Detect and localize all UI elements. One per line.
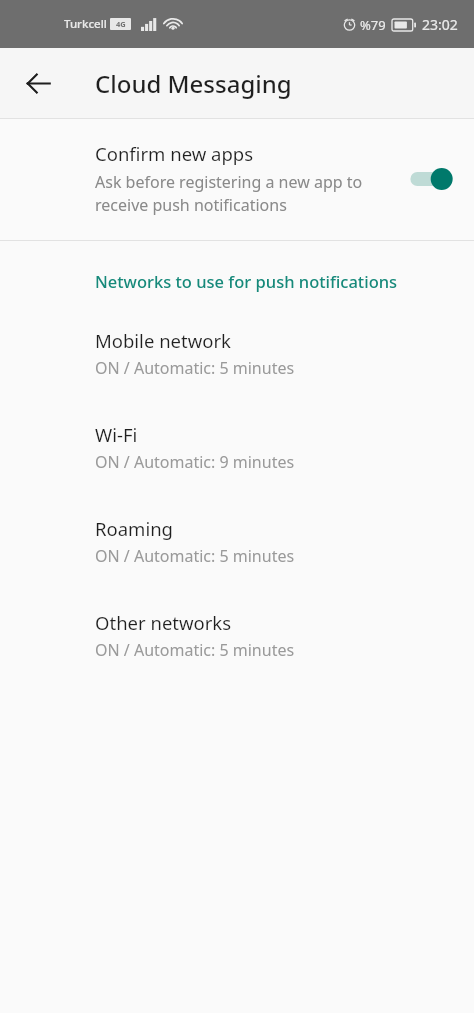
staticText: ON / Automatic: 9 minutes [95, 451, 295, 473]
staticText: Wi-Fi [95, 422, 138, 447]
staticText: 23:02 [422, 15, 458, 34]
staticText: Roaming [95, 516, 173, 541]
staticText: Mobile network [95, 328, 231, 353]
button[interactable]: Confirm new apps [0, 119, 474, 240]
button[interactable]: Other networks [0, 600, 474, 694]
staticText: %79 [360, 16, 386, 34]
staticText: Turkcell [64, 16, 107, 32]
staticText: ON / Automatic: 5 minutes [95, 639, 295, 661]
staticText: Confirm new apps [95, 141, 254, 166]
button[interactable]: Back [14, 59, 62, 107]
staticText: ON / Automatic: 5 minutes [95, 357, 295, 379]
button[interactable]: Wi-Fi [0, 412, 474, 506]
staticText: Networks to use for push notifications [95, 270, 398, 292]
staticText: 4G [116, 19, 126, 29]
staticText: ON / Automatic: 5 minutes [95, 545, 295, 567]
staticText: Other networks [95, 610, 232, 635]
staticText: Cloud Messaging [95, 67, 292, 100]
button[interactable]: Confirm new apps toggle, on [402, 159, 458, 199]
button[interactable]: Roaming [0, 506, 474, 600]
staticText: Ask before registering a new app to rece… [95, 171, 392, 216]
button[interactable]: Mobile network [0, 318, 474, 412]
